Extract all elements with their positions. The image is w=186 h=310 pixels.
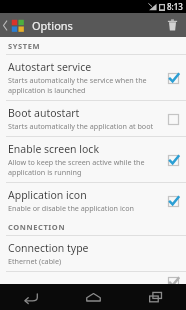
staticText: application is launched [8,85,86,95]
button[interactable]: Home [62,284,124,310]
staticText: Starts automatically the application at … [8,121,154,131]
button[interactable]: Boot autostart [0,101,186,136]
button[interactable]: Checked [166,153,180,167]
button[interactable]: Unchecked [166,112,180,126]
staticText: SYSTEM [8,41,41,51]
staticText: Application icon [8,188,87,202]
staticText: 8:13 [167,1,183,12]
button[interactable]: Checked [166,194,180,208]
button[interactable]: Connection type [0,236,186,271]
staticText: Ethernet (cable) [8,256,62,266]
staticText: Enable or disable the application icon [8,203,135,213]
staticText: Connection type [8,241,89,255]
button[interactable]: Autostart service [0,55,186,100]
button[interactable]: Back [0,284,62,310]
staticText: Allow to keep the screen active while th… [8,157,145,167]
button[interactable]: Require WiFi [0,272,186,284]
button[interactable]: Delete [158,13,186,37]
staticText: Enable screen lock [8,142,100,156]
staticText: CONNECTION [8,222,66,232]
staticText: Autostart service [8,60,92,74]
button[interactable]: Recents [124,284,186,310]
staticText: Boot autostart [8,106,80,120]
button[interactable]: Navigate up [0,13,26,37]
button[interactable]: Enable screen lock [0,137,186,182]
staticText: Options [32,18,73,33]
staticText: Starts automatically the service when th… [8,75,147,85]
button[interactable]: Checked [166,277,180,279]
button[interactable]: Checked [166,71,180,85]
button[interactable]: Application icon [0,183,186,218]
staticText: application is running [8,167,82,177]
